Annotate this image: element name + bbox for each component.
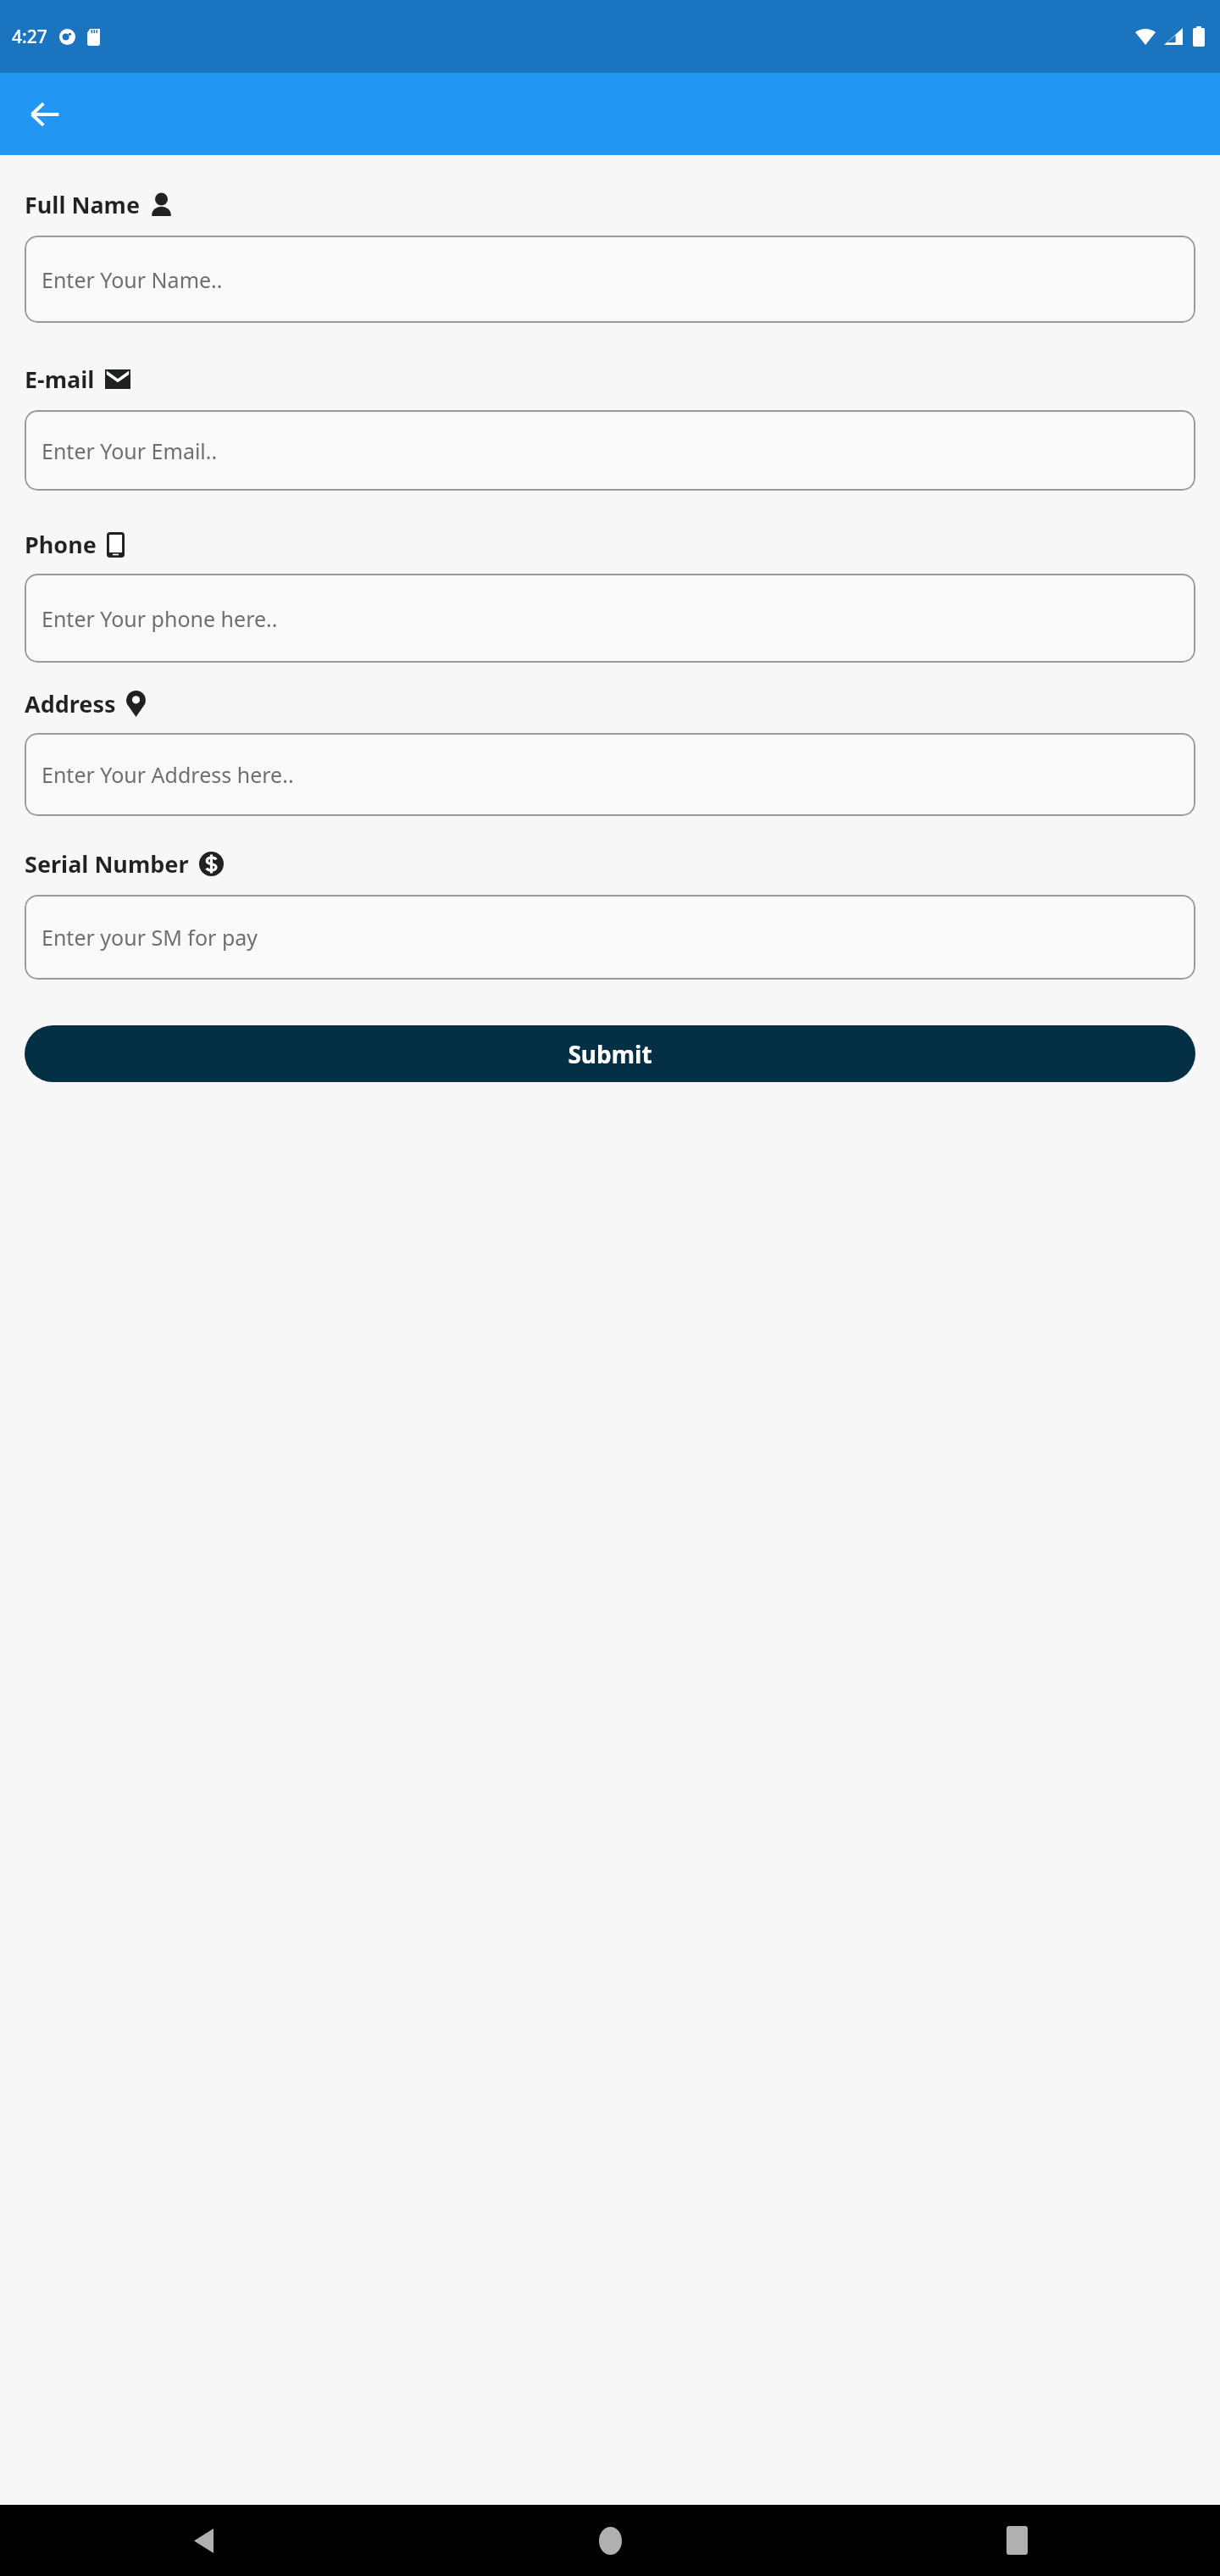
- staticText: Enter Your phone here..: [42, 604, 278, 633]
- staticText: E-mail: [25, 364, 95, 395]
- button[interactable]: Enter Your Email..: [25, 410, 1195, 491]
- staticText: Phone: [25, 529, 97, 560]
- button[interactable]: Enter Your Name..: [25, 236, 1195, 323]
- staticText: Address: [25, 688, 116, 719]
- button[interactable]: Enter Your phone here..: [25, 574, 1195, 663]
- staticText: Submit: [568, 1038, 652, 1070]
- button[interactable]: Enter Your Address here..: [25, 733, 1195, 816]
- staticText: Serial Number: [25, 848, 189, 880]
- button[interactable]: Recent apps: [813, 2505, 1220, 2576]
- staticText: Full Name: [25, 189, 141, 220]
- button[interactable]: Enter your SM for pay: [25, 895, 1195, 980]
- button[interactable]: Back: [19, 88, 71, 141]
- staticText: Enter Your Name..: [42, 265, 223, 294]
- button[interactable]: Home: [407, 2505, 813, 2576]
- staticText: Enter Your Email..: [42, 436, 218, 465]
- staticText: Enter your SM for pay: [42, 923, 258, 952]
- staticText: 4:27: [12, 25, 47, 49]
- button[interactable]: Back: [0, 2505, 407, 2576]
- staticText: Enter Your Address here..: [42, 760, 294, 789]
- button[interactable]: Submit: [25, 1025, 1195, 1082]
